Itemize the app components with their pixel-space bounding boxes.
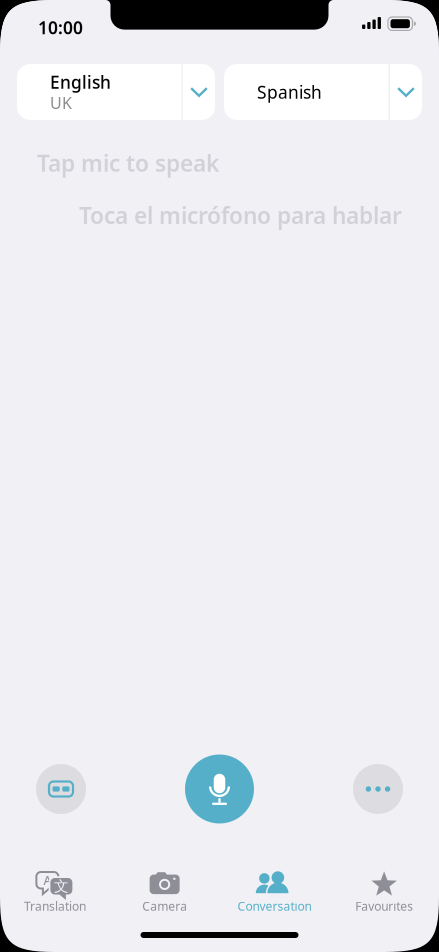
- button[interactable]: More: [353, 764, 403, 814]
- button[interactable]: Favourites: [329, 860, 439, 918]
- staticText: UK: [50, 92, 72, 113]
- staticText: 10:00: [38, 16, 83, 39]
- staticText: Camera: [142, 898, 187, 914]
- button[interactable]: Record: [185, 754, 254, 823]
- staticText: English: [50, 71, 111, 94]
- staticText: 文: [54, 877, 69, 895]
- staticText: Tap mic to speak: [37, 148, 219, 178]
- button[interactable]: A: [0, 860, 110, 918]
- staticText: Translation: [24, 898, 86, 914]
- staticText: Favourites: [355, 898, 413, 914]
- staticText: Spanish: [257, 80, 322, 103]
- staticText: Conversation: [237, 898, 311, 914]
- button[interactable]: Side by side view: [36, 764, 86, 814]
- button[interactable]: Spanish: [224, 64, 422, 120]
- staticText: Toca el micrófono para hablar: [79, 200, 402, 230]
- button[interactable]: English: [17, 64, 215, 120]
- staticText: A: [43, 872, 51, 888]
- button[interactable]: Camera: [110, 860, 220, 918]
- button[interactable]: Conversation: [219, 860, 329, 918]
